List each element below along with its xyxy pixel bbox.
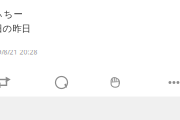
button[interactable]: More (168, 76, 179, 88)
button[interactable]: Boost (0, 76, 11, 88)
button[interactable]: Favourite (109, 76, 121, 88)
staticText: ぃちー (0, 8, 22, 20)
staticText: 日の昨日 (0, 23, 30, 34)
staticText: 9/8/21 20:28 (0, 47, 37, 56)
button[interactable]: Reply (55, 76, 67, 88)
